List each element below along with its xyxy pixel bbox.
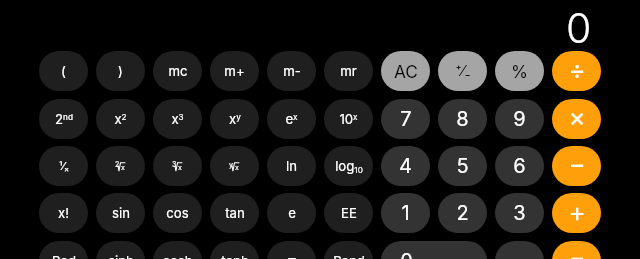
button[interactable]: root 2 of x [96, 146, 145, 186]
button[interactable]: cosh [153, 241, 202, 259]
staticText: 3 [172, 160, 177, 168]
staticText: ( [61, 63, 66, 79]
staticText: cosh [162, 253, 193, 259]
staticText: 7 [400, 107, 412, 131]
staticText: Rad [52, 253, 76, 259]
button[interactable]: 4 [381, 146, 430, 186]
button[interactable]: plus [552, 193, 601, 233]
staticText: sinh [108, 253, 134, 259]
button[interactable]: 6 [495, 146, 544, 186]
button[interactable]: divide [552, 51, 601, 91]
button[interactable]: 2 [438, 193, 487, 233]
staticText: x [235, 163, 239, 171]
staticText: 9 [513, 107, 526, 131]
staticText: cos [166, 205, 189, 221]
button[interactable]: ln [267, 146, 316, 186]
staticText: 2 [115, 160, 120, 168]
staticText: x! [58, 205, 69, 221]
button[interactable]: plus minus [438, 51, 487, 91]
staticText: ¹⁄ₓ [59, 160, 69, 173]
staticText: e [288, 205, 296, 221]
button[interactable]: root 3 of x [153, 146, 202, 186]
button[interactable]: x2 [96, 99, 145, 139]
button[interactable]: multiply [552, 99, 601, 139]
staticText: 0 [400, 249, 413, 259]
button[interactable]: 9 [495, 99, 544, 139]
button[interactable]: Rad [39, 241, 88, 259]
staticText: mc [168, 63, 188, 79]
button[interactable]: m- [267, 51, 316, 91]
button[interactable]: tan [210, 193, 259, 233]
staticText: EE [341, 205, 357, 221]
button[interactable]: 3 [495, 193, 544, 233]
staticText: x3 [171, 111, 184, 127]
button[interactable]: Rand [324, 241, 373, 259]
staticText: m+ [224, 63, 245, 79]
button[interactable]: 1 [381, 193, 430, 233]
button[interactable]: sinh [96, 241, 145, 259]
button[interactable]: pi [267, 241, 316, 259]
staticText: m- [283, 63, 301, 79]
button[interactable]: mr [324, 51, 373, 91]
staticText: mr [340, 63, 357, 79]
staticText: − [568, 148, 586, 179]
staticText: ex [285, 111, 298, 127]
staticText: 0 [566, 3, 592, 50]
staticText: × [568, 101, 586, 132]
button[interactable]: ex [267, 99, 316, 139]
button[interactable]: minus [552, 146, 601, 186]
button[interactable]: 2nd [39, 99, 88, 139]
staticText: tan [225, 205, 245, 221]
staticText: = [568, 244, 586, 259]
staticText: 2 [456, 201, 469, 225]
button[interactable]: decimal point [495, 241, 544, 259]
staticText: 8 [456, 107, 469, 131]
button[interactable]: 8 [438, 99, 487, 139]
staticText: 5 [456, 154, 469, 178]
staticText: x [121, 163, 125, 171]
staticText: π [288, 253, 296, 259]
button[interactable]: mc [153, 51, 202, 91]
staticText: Rand [333, 253, 365, 259]
button[interactable]: 10x [324, 99, 373, 139]
button[interactable]: cos [153, 193, 202, 233]
staticText: + [568, 196, 586, 227]
button[interactable]: 7 [381, 99, 430, 139]
staticText: 2nd [55, 111, 73, 127]
button[interactable]: EE [324, 193, 373, 233]
button[interactable]: log10 [324, 146, 373, 186]
button[interactable]: equals [552, 241, 601, 259]
button[interactable]: 0 [381, 241, 487, 259]
button[interactable]: root y of x [210, 146, 259, 186]
button[interactable]: x! [39, 193, 88, 233]
staticText: 4 [399, 154, 412, 178]
button[interactable]: ( [39, 51, 88, 91]
staticText: x [178, 163, 182, 171]
staticText: 6 [513, 154, 526, 178]
staticText: ) [118, 63, 123, 79]
staticText: log10 [335, 158, 363, 175]
staticText: 10x [339, 111, 358, 127]
button[interactable]: 5 [438, 146, 487, 186]
staticText: y [229, 160, 233, 168]
button[interactable]: sin [96, 193, 145, 233]
button[interactable]: x3 [153, 99, 202, 139]
staticText: tanh [221, 253, 249, 259]
staticText: ÷ [568, 54, 586, 85]
staticText: AC [394, 61, 418, 82]
staticText: sin [112, 205, 130, 221]
button[interactable]: one over x [39, 146, 88, 186]
staticText: ⁺⁄₋ [455, 62, 471, 80]
button[interactable]: % [495, 51, 544, 91]
staticText: 1 [401, 201, 410, 225]
button[interactable]: AC [381, 51, 430, 91]
staticText: 3 [513, 201, 526, 225]
button[interactable]: m+ [210, 51, 259, 91]
staticText: xy [229, 111, 241, 127]
button[interactable]: tanh [210, 241, 259, 259]
staticText: ln [286, 158, 297, 174]
button[interactable]: ) [96, 51, 145, 91]
button[interactable]: e [267, 193, 316, 233]
button[interactable]: xy [210, 99, 259, 139]
